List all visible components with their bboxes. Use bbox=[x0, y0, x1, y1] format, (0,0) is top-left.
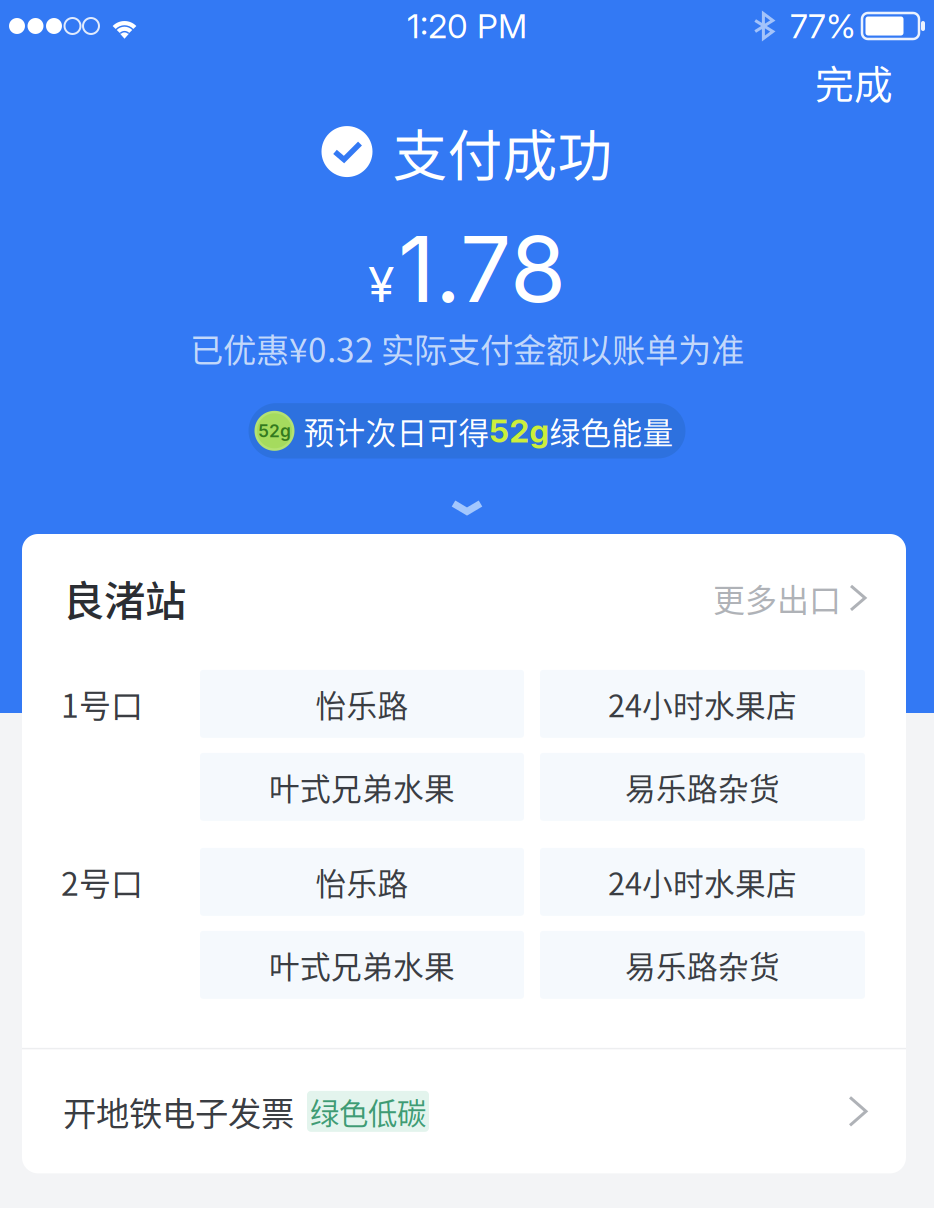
staticText: 良渚站 bbox=[63, 568, 186, 628]
staticText: 1.78 bbox=[398, 214, 566, 324]
staticText: 24小时水果店 bbox=[608, 682, 797, 726]
button[interactable]: 怡乐路 bbox=[200, 848, 524, 916]
staticText: 易乐路杂货 bbox=[625, 943, 780, 987]
button[interactable]: 易乐路杂货 bbox=[540, 931, 865, 999]
staticText: 支付成功 bbox=[392, 112, 612, 191]
button[interactable]: 24小时水果店 bbox=[540, 670, 865, 738]
button[interactable]: 叶式兄弟水果 bbox=[200, 753, 524, 821]
button[interactable]: 叶式兄弟水果 bbox=[200, 931, 524, 999]
staticText: 已优惠¥0.32 实际支付金额以账单为准 bbox=[190, 324, 744, 372]
button[interactable]: 24小时水果店 bbox=[540, 848, 865, 916]
staticText: 预计次日可得 bbox=[303, 409, 489, 453]
button[interactable]: 更多出口 bbox=[713, 575, 866, 621]
staticText: 开地铁电子发票 bbox=[63, 1087, 294, 1135]
staticText: 1号口 bbox=[61, 681, 143, 727]
staticText: 2号口 bbox=[61, 859, 143, 905]
staticText: 24小时水果店 bbox=[608, 860, 797, 904]
staticText: 1:20 PM bbox=[407, 6, 527, 46]
staticText: 52g bbox=[258, 420, 291, 441]
staticText: 叶式兄弟水果 bbox=[269, 765, 455, 809]
staticText: 易乐路杂货 bbox=[625, 765, 780, 809]
staticText: 完成 bbox=[815, 54, 893, 110]
staticText: 52g bbox=[489, 411, 549, 450]
button[interactable]: 开地铁电子发票 bbox=[22, 1049, 906, 1173]
staticText: 绿色低碳 bbox=[310, 1090, 426, 1133]
staticText: 怡乐路 bbox=[315, 682, 408, 726]
staticText: 叶式兄弟水果 bbox=[269, 943, 455, 987]
staticText: 更多出口 bbox=[713, 575, 841, 621]
staticText: 绿色能量 bbox=[549, 409, 673, 453]
button[interactable]: 易乐路杂货 bbox=[540, 753, 865, 821]
button[interactable]: 怡乐路 bbox=[200, 670, 524, 738]
staticText: ¥ bbox=[368, 255, 394, 314]
button[interactable]: 完成 bbox=[805, 52, 903, 112]
staticText: 77% bbox=[790, 6, 856, 46]
button[interactable]: Expand details bbox=[444, 494, 489, 520]
staticText: 怡乐路 bbox=[315, 860, 408, 904]
